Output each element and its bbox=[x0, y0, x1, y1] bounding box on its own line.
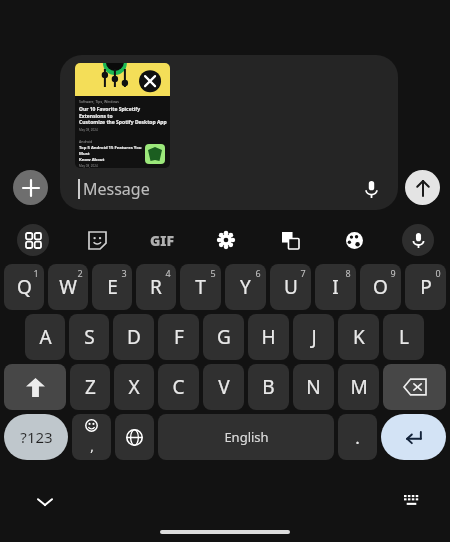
button[interactable]: Change language bbox=[115, 414, 154, 460]
staticText: B bbox=[262, 374, 275, 400]
staticText: L bbox=[399, 324, 409, 350]
staticText: K bbox=[353, 324, 365, 350]
button[interactable]: T bbox=[180, 264, 221, 310]
button[interactable]: N bbox=[293, 364, 334, 410]
button[interactable]: G bbox=[203, 314, 244, 360]
staticText: 0 bbox=[435, 267, 441, 279]
button[interactable]: Z bbox=[70, 364, 110, 410]
button[interactable]: Stickers bbox=[65, 222, 130, 258]
staticText: 6 bbox=[255, 267, 261, 279]
staticText: M bbox=[350, 374, 368, 400]
staticText: T bbox=[195, 274, 206, 300]
staticText: May 08, 2024 bbox=[79, 164, 98, 168]
button[interactable]: Voice typing bbox=[402, 224, 434, 256]
button[interactable]: J bbox=[293, 314, 334, 360]
button[interactable]: Hide keyboard bbox=[30, 487, 60, 517]
staticText: 4 bbox=[165, 267, 171, 279]
staticText: C bbox=[172, 374, 185, 400]
button[interactable]: . bbox=[338, 414, 377, 460]
button[interactable]: Y bbox=[225, 264, 266, 310]
button[interactable]: Enter bbox=[381, 414, 446, 460]
button[interactable]: More apps bbox=[17, 224, 49, 256]
button[interactable]: Emoji bbox=[72, 414, 111, 460]
staticText: Top 5 Android 15 Features You Must Know … bbox=[79, 145, 145, 163]
staticText: 9 bbox=[390, 267, 396, 279]
button[interactable]: Q bbox=[4, 264, 44, 310]
button[interactable]: K bbox=[338, 314, 379, 360]
staticText: S bbox=[84, 324, 95, 350]
button[interactable]: W bbox=[48, 264, 88, 310]
staticText: G bbox=[217, 324, 231, 350]
button[interactable]: Voice input bbox=[356, 174, 386, 204]
staticText: 8 bbox=[345, 267, 351, 279]
staticText: R bbox=[150, 274, 162, 300]
button[interactable]: S bbox=[69, 314, 109, 360]
staticText: . bbox=[355, 426, 360, 449]
button[interactable]: Send bbox=[405, 170, 440, 205]
staticText: N bbox=[306, 374, 321, 400]
button[interactable]: H bbox=[248, 314, 289, 360]
staticText: O bbox=[373, 274, 388, 300]
button[interactable]: R bbox=[136, 264, 176, 310]
staticText: May 08, 2024 bbox=[79, 128, 98, 132]
button[interactable]: Themes bbox=[322, 222, 386, 258]
button[interactable]: Software, Tips, Windows bbox=[75, 63, 170, 168]
button[interactable]: C bbox=[158, 364, 199, 410]
staticText: 5 bbox=[210, 267, 216, 279]
staticText: V bbox=[218, 374, 230, 400]
button[interactable]: Settings bbox=[194, 222, 258, 258]
staticText: Software, Tips, Windows bbox=[79, 99, 119, 104]
staticText: I bbox=[332, 274, 339, 300]
button[interactable]: L bbox=[383, 314, 424, 360]
staticText: 1 bbox=[33, 267, 39, 279]
staticText: D bbox=[127, 324, 141, 350]
button[interactable]: Switch keyboard bbox=[396, 487, 426, 517]
staticText: F bbox=[174, 324, 184, 350]
staticText: J bbox=[311, 324, 317, 350]
staticText: U bbox=[284, 274, 298, 300]
button[interactable]: M bbox=[338, 364, 379, 410]
button[interactable]: V bbox=[203, 364, 244, 410]
staticText: X bbox=[128, 374, 140, 400]
button[interactable]: Add attachment bbox=[13, 170, 48, 205]
staticText: 2 bbox=[77, 267, 83, 279]
button[interactable]: P bbox=[405, 264, 446, 310]
button[interactable]: U bbox=[270, 264, 311, 310]
button[interactable]: Shift bbox=[4, 364, 66, 410]
staticText: 3 bbox=[121, 267, 127, 279]
button[interactable]: I bbox=[315, 264, 356, 310]
staticText: English bbox=[224, 428, 269, 446]
staticText: H bbox=[261, 324, 276, 350]
button[interactable]: Backspace bbox=[383, 364, 446, 410]
staticText: ?123 bbox=[20, 427, 53, 447]
staticText: Message bbox=[83, 178, 150, 200]
button[interactable]: F bbox=[158, 314, 199, 360]
staticText: , bbox=[90, 437, 94, 455]
staticText: W bbox=[59, 274, 77, 300]
staticText: Our 10 Favorite Spicetify Extensions to … bbox=[79, 106, 167, 126]
button[interactable]: E bbox=[92, 264, 132, 310]
button[interactable]: English bbox=[158, 414, 334, 460]
button[interactable]: B bbox=[248, 364, 289, 410]
button[interactable]: D bbox=[113, 314, 154, 360]
button[interactable]: X bbox=[114, 364, 154, 410]
button[interactable]: A bbox=[25, 314, 65, 360]
staticText: Android bbox=[79, 139, 93, 144]
button[interactable]: ?123 bbox=[4, 414, 68, 460]
staticText: Z bbox=[85, 374, 96, 400]
staticText: Q bbox=[17, 274, 32, 300]
button[interactable]: O bbox=[360, 264, 401, 310]
staticText: GIF bbox=[150, 231, 175, 250]
staticText: E bbox=[107, 274, 118, 300]
button[interactable]: GIF bbox=[130, 222, 194, 258]
staticText: P bbox=[420, 274, 432, 300]
staticText: A bbox=[39, 324, 52, 350]
staticText: 7 bbox=[300, 267, 306, 279]
staticText: Y bbox=[240, 274, 251, 300]
button[interactable]: Translate bbox=[258, 222, 322, 258]
